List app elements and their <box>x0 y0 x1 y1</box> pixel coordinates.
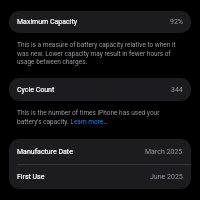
button[interactable]: First Use <box>9 165 191 189</box>
staticText: 92% <box>170 18 183 26</box>
staticText: Cycle Count <box>17 86 55 94</box>
button[interactable]: Manufacture Date <box>9 139 191 164</box>
staticText: This is a measure of battery capacity re… <box>17 41 183 65</box>
staticText: June 2025 <box>150 173 183 181</box>
staticText: March 2025 <box>145 148 183 156</box>
staticText: 344 <box>171 86 183 94</box>
button[interactable]: Maximum Capacity <box>9 11 191 33</box>
staticText: Manufacture Date <box>17 148 73 156</box>
staticText: First Use <box>17 173 45 181</box>
button[interactable]: Cycle Count <box>9 78 191 101</box>
staticText: This is the number of times iPhone has u… <box>17 109 183 125</box>
staticText: Maximum Capacity <box>17 18 78 26</box>
